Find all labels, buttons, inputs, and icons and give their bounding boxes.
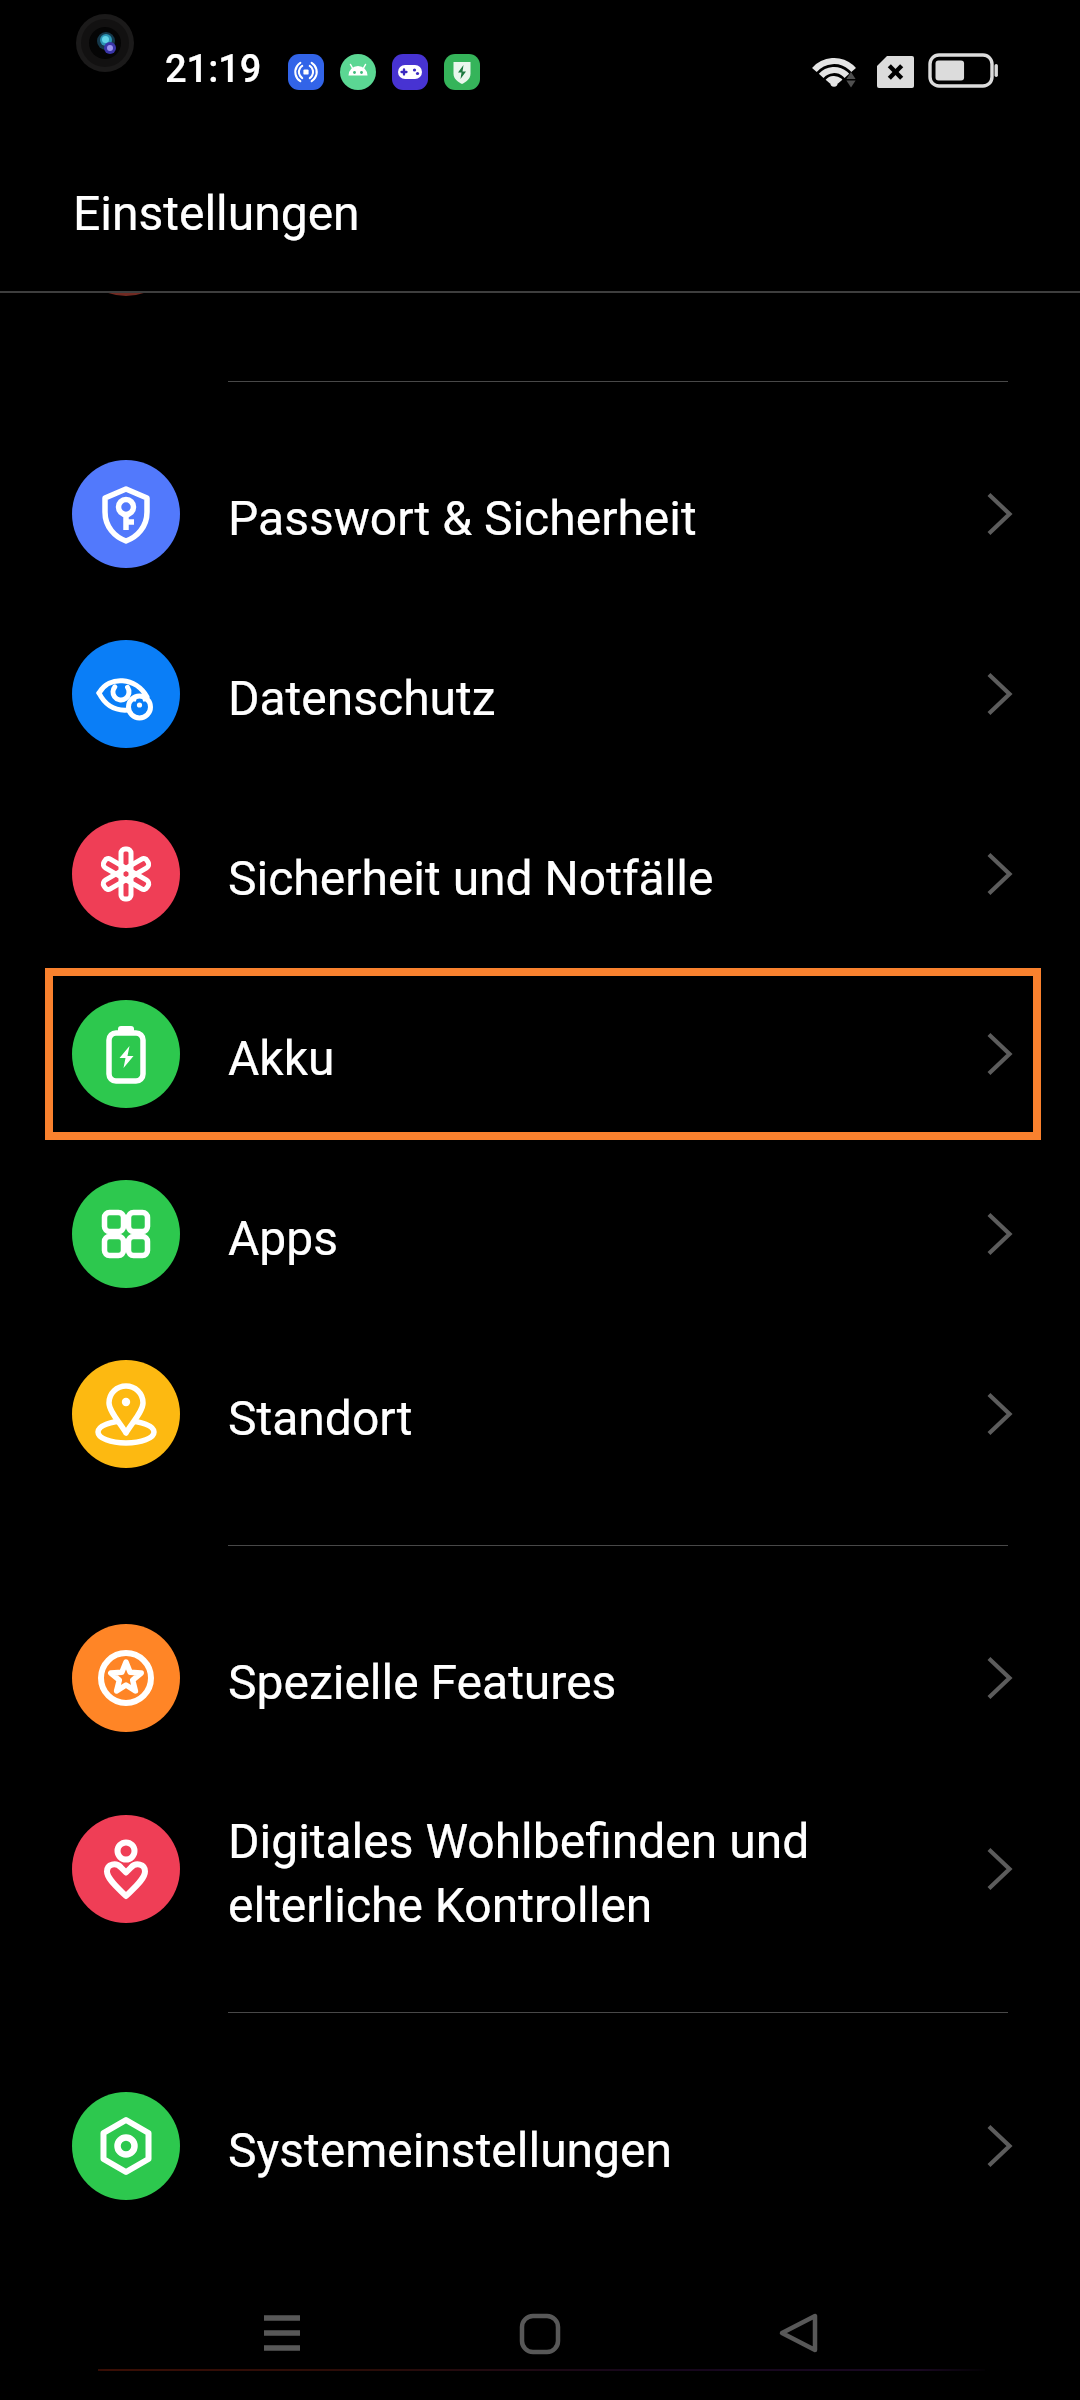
staticText: Passwort & Sicherheit <box>228 490 922 546</box>
button[interactable]: Recent apps <box>226 2277 338 2389</box>
staticText: Einstellungen <box>73 185 360 241</box>
staticText: Datenschutz <box>228 670 922 726</box>
staticText: Digitales Wohlbefinden und elterliche Ko… <box>228 1813 922 1933</box>
button[interactable]: Akku <box>0 964 1080 1144</box>
staticText: Apps <box>228 1210 922 1266</box>
button[interactable]: Home <box>484 2278 596 2390</box>
button[interactable]: Sicherheit und Notfälle <box>0 784 1080 964</box>
button[interactable]: Standort <box>0 1324 1080 1504</box>
staticText: Sicherheit und Notfälle <box>228 850 922 906</box>
staticText: Systemeinstellungen <box>228 2122 922 2178</box>
staticText: 21:19 <box>165 47 262 92</box>
button[interactable]: Digitales Wohlbefinden und elterliche Ko… <box>0 1768 1080 1970</box>
button[interactable]: Spezielle Features <box>0 1588 1080 1768</box>
button[interactable]: Apps <box>0 1144 1080 1324</box>
button[interactable]: Passwort & Sicherheit <box>0 424 1080 604</box>
staticText: Standort <box>228 1390 922 1446</box>
staticText: Spezielle Features <box>228 1654 922 1710</box>
button[interactable]: Back <box>742 2277 854 2389</box>
button[interactable]: Systemeinstellungen <box>0 2056 1080 2236</box>
button[interactable]: Datenschutz <box>0 604 1080 784</box>
staticText: Akku <box>228 1030 922 1086</box>
